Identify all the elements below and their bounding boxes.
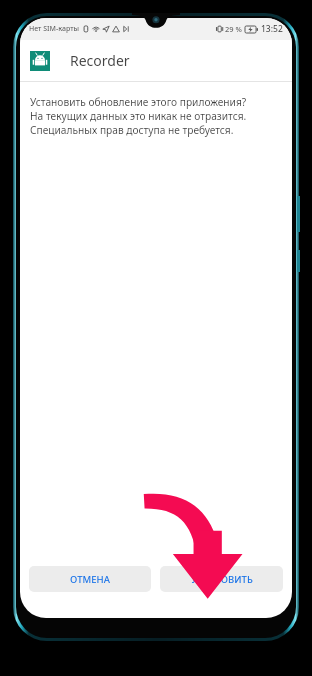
staticText: Специальных прав доступа не требуется.: [30, 123, 234, 137]
button[interactable]: ОТМЕНА: [29, 566, 151, 592]
staticText: Recorder: [70, 51, 130, 70]
staticText: УСТАНОВИТЬ: [191, 573, 253, 586]
staticText: Нет SIM-карты: [29, 24, 80, 34]
staticText: ОТМЕНА: [70, 573, 110, 586]
staticText: Установить обновление этого приложения?: [30, 95, 247, 109]
button[interactable]: УСТАНОВИТЬ: [160, 566, 283, 592]
staticText: На текущих данных это никак не отразится…: [30, 109, 247, 123]
staticText: 13:52: [261, 23, 283, 35]
other: Recorder app icon: [30, 51, 50, 71]
staticText: 29 %: [225, 24, 242, 34]
